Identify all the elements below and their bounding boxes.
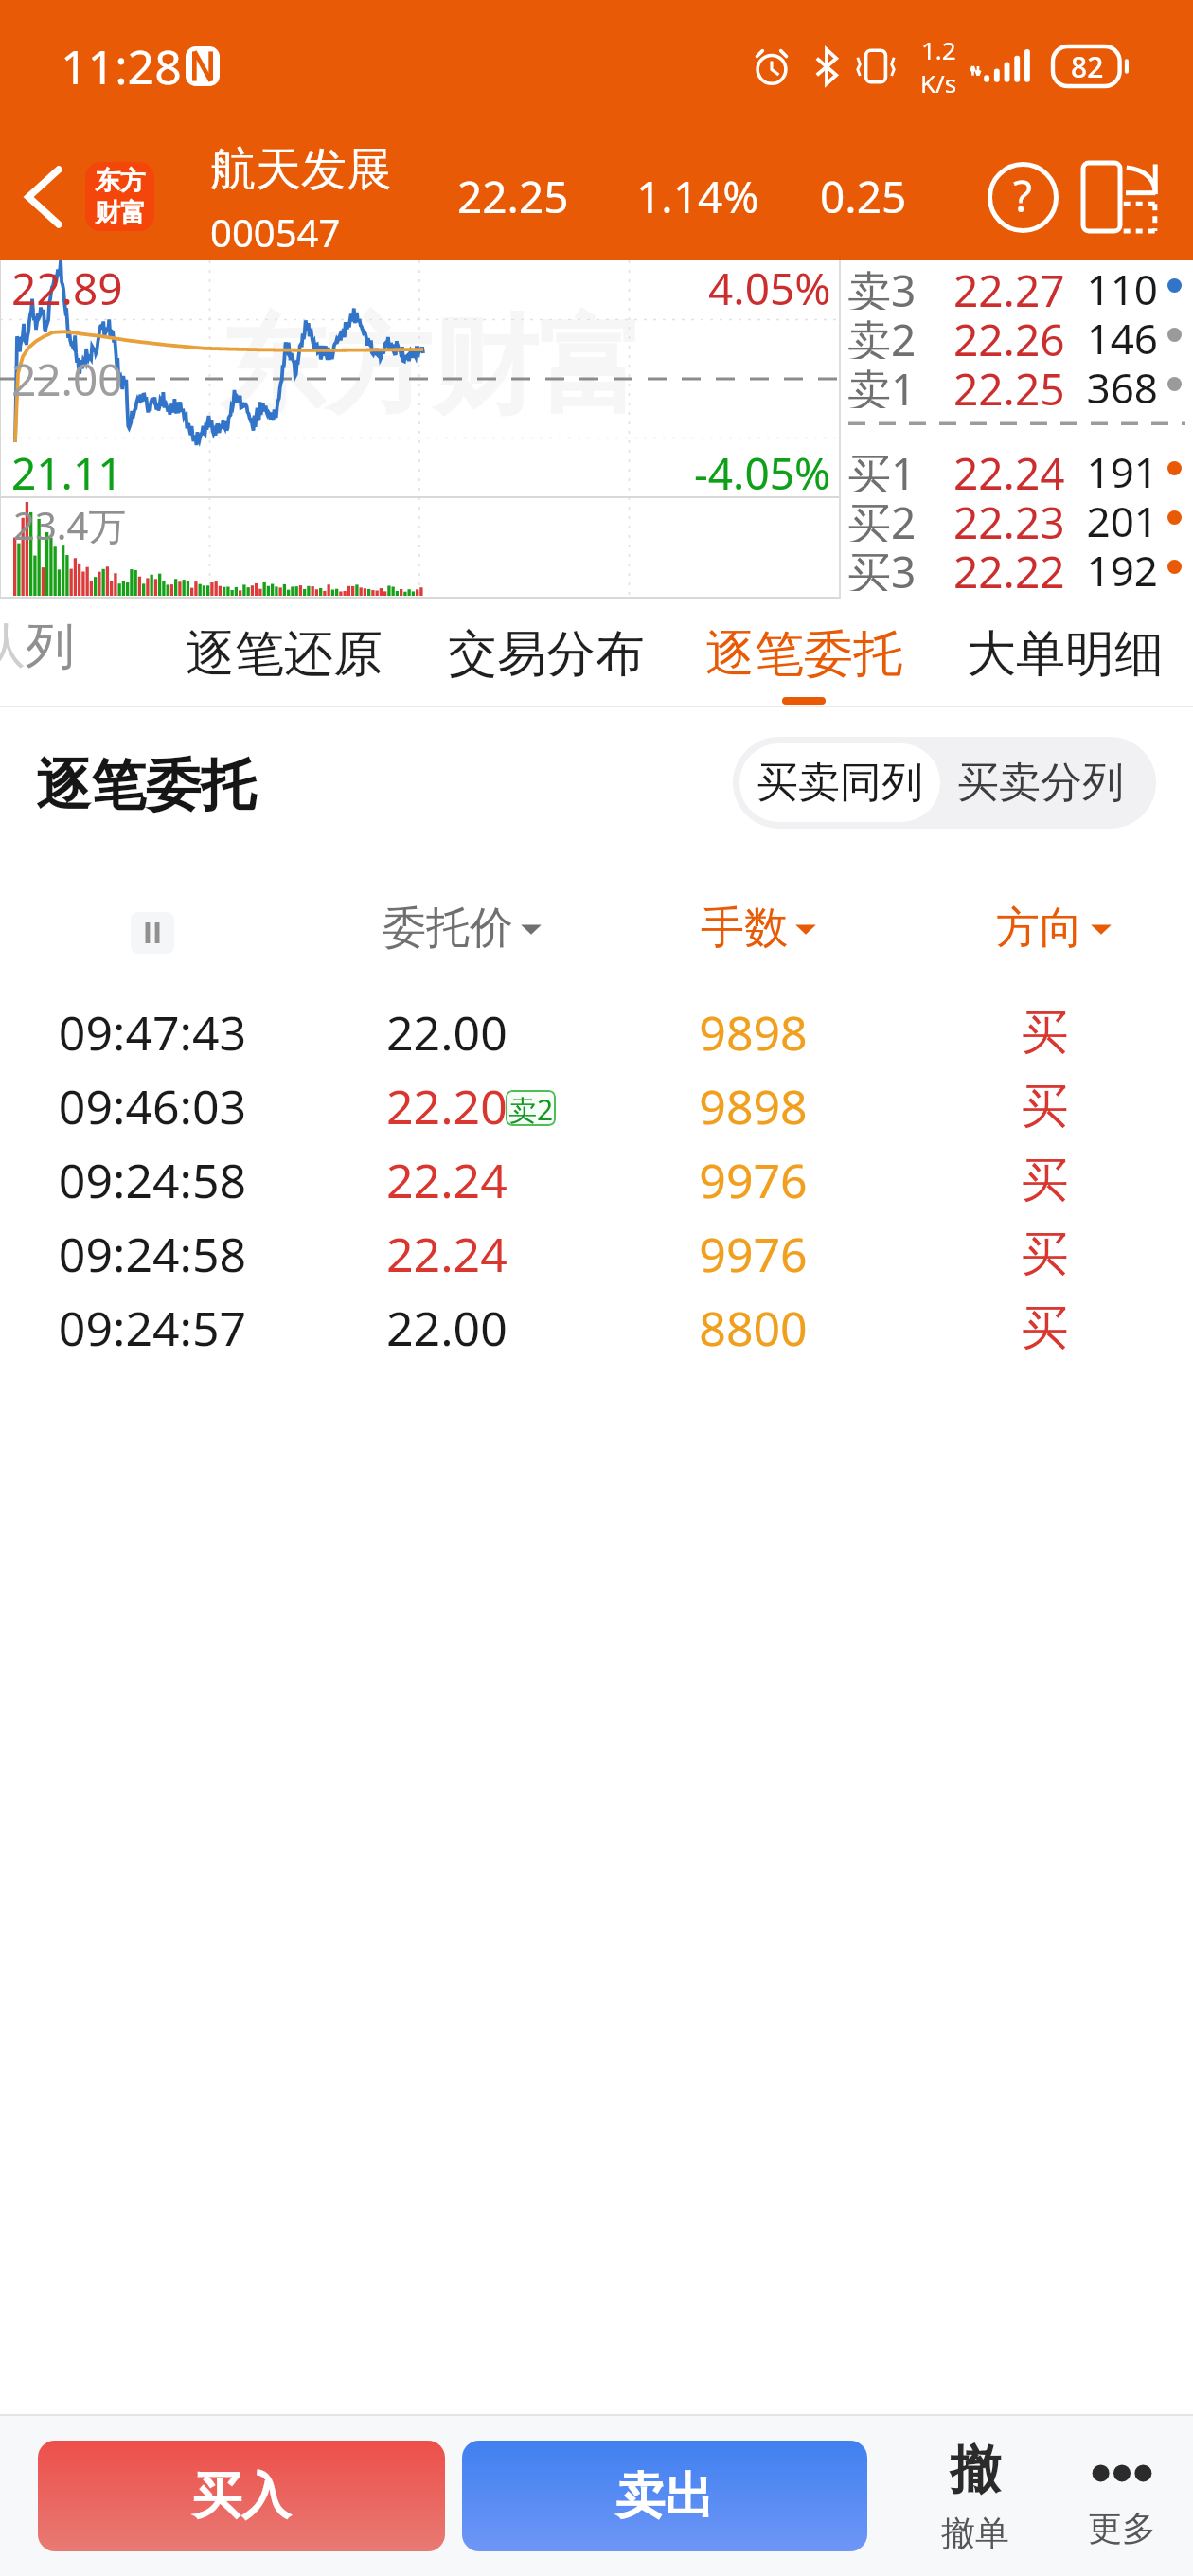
staticText: 买1 (847, 443, 917, 492)
button[interactable]: 买入 (38, 2441, 445, 2551)
staticText: 21.11 (11, 443, 123, 503)
button[interactable]: Pause (131, 912, 174, 954)
staticText: 航天发展 (210, 141, 392, 198)
staticText: 买卖同列 (757, 757, 923, 809)
staticText: 22.00 (386, 1000, 507, 1064)
staticText: 9976 (595, 1148, 912, 1212)
staticText: 22.23 (953, 492, 1065, 542)
staticText: 买 (904, 1225, 1185, 1284)
button[interactable]: 买卖分列 (940, 743, 1141, 822)
staticText: 买3 (847, 542, 917, 591)
staticText: 卖2 (508, 1090, 554, 1126)
staticText: 卖3 (847, 260, 917, 310)
button[interactable]: 09:24:58 (0, 1143, 1193, 1217)
staticText: 22.00 (386, 1296, 507, 1360)
button[interactable]: More (1051, 2442, 1193, 2549)
staticText: 卖出 (615, 2465, 714, 2528)
button[interactable]: 交易分布 (448, 599, 645, 707)
staticText: 201 (1068, 492, 1158, 542)
button[interactable]: 买卖同列 (739, 743, 940, 822)
staticText: 8800 (595, 1296, 912, 1360)
staticText: 委托价 (383, 901, 513, 956)
button[interactable]: Help (970, 145, 1075, 249)
staticText: 方向 (996, 901, 1083, 956)
staticText: 22.20 (386, 1074, 507, 1138)
staticText: 22.26 (953, 310, 1065, 359)
button[interactable]: 09:24:57 (0, 1291, 1193, 1365)
staticText: 买2 (847, 492, 917, 542)
staticText: 1.14% (636, 167, 759, 226)
staticText: 逐笔委托 (705, 623, 902, 686)
staticText: 22.22 (953, 542, 1065, 591)
staticText: 82 (1071, 47, 1104, 86)
staticText: 撤单 (941, 2512, 1009, 2554)
staticText: 09:24:58 (3, 1148, 302, 1212)
button[interactable]: 大单明细 (967, 599, 1164, 707)
staticText: 买 (904, 1151, 1185, 1210)
button[interactable]: 委托价 (314, 901, 610, 956)
staticText: 买 (904, 1003, 1185, 1063)
button[interactable]: 撤 (899, 2438, 1051, 2554)
button[interactable]: Rotate screen (1067, 145, 1171, 249)
button[interactable]: 卖1 (841, 359, 1193, 408)
staticText: 买 (904, 1298, 1185, 1358)
staticText: 191 (1068, 443, 1158, 492)
button[interactable]: 买1 (841, 443, 1193, 492)
button[interactable]: 逐笔委托 (705, 599, 902, 707)
staticText: 0.25 (820, 167, 907, 226)
staticText: 更多 (1088, 2507, 1156, 2549)
staticText: K/s (920, 66, 957, 99)
staticText: 大单明细 (967, 623, 1164, 686)
button[interactable]: 排 (0, 597, 79, 697)
staticText: 手数 (701, 901, 788, 956)
staticText: 09:46:03 (3, 1074, 302, 1138)
staticText: -4.05% (694, 443, 831, 503)
staticText: 22.25 (457, 167, 569, 226)
staticText: 逐笔委托 (36, 751, 256, 820)
button[interactable]: 09:46:03 (0, 1069, 1193, 1143)
staticText: 4.05% (708, 259, 831, 318)
button[interactable]: 卖出 (462, 2441, 867, 2551)
staticText: 09:47:43 (3, 1000, 302, 1064)
staticText: 队 (0, 616, 26, 678)
staticText: 146 (1068, 310, 1158, 359)
button[interactable]: 买2 (841, 492, 1193, 542)
button[interactable]: East Money (85, 162, 154, 231)
staticText: 22.00 (11, 349, 123, 409)
staticText: 22.25 (953, 359, 1065, 408)
staticText: 23.4万 (13, 499, 127, 551)
staticText: 192 (1068, 542, 1158, 591)
staticText: 000547 (210, 206, 341, 258)
staticText: 列 (26, 616, 75, 678)
staticText: 9976 (595, 1222, 912, 1286)
staticText: 22.24 (386, 1148, 507, 1212)
button[interactable]: 09:47:43 (0, 995, 1193, 1069)
staticText: 买 (904, 1077, 1185, 1136)
button[interactable]: 卖3 (841, 260, 1193, 310)
staticText: 9898 (595, 1074, 912, 1138)
button[interactable]: 方向 (914, 901, 1193, 956)
staticText: 110 (1068, 260, 1158, 310)
staticText: 22.27 (953, 260, 1065, 310)
staticText: 财富 (95, 197, 146, 229)
button[interactable]: 手数 (600, 901, 917, 956)
staticText: ? (1013, 166, 1032, 225)
button[interactable]: 卖2 (841, 310, 1193, 359)
staticText: 卖2 (847, 310, 917, 359)
staticText: 1.2 (921, 33, 956, 66)
button[interactable]: 09:24:58 (0, 1217, 1193, 1291)
staticText: 22.89 (11, 259, 123, 318)
staticText: 东方 (95, 165, 146, 197)
staticText: 22.24 (953, 443, 1065, 492)
button[interactable]: 买3 (841, 542, 1193, 591)
staticText: 11:28 (61, 34, 182, 98)
staticText: 368 (1068, 359, 1158, 408)
staticText: 买卖分列 (957, 757, 1124, 809)
staticText: 撤 (950, 2438, 1001, 2502)
staticText: 卖1 (847, 359, 917, 408)
staticText: 交易分布 (448, 623, 645, 686)
button[interactable]: Back (0, 133, 87, 260)
button[interactable]: 逐笔还原 (186, 599, 383, 707)
staticText: 逐笔还原 (186, 623, 383, 686)
staticText: 09:24:57 (3, 1296, 302, 1360)
